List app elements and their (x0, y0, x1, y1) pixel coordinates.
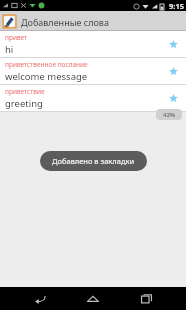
staticText: Добавлено в закладки (52, 156, 135, 166)
button[interactable]: Home (80, 287, 106, 310)
staticText: greeting (5, 97, 43, 110)
button[interactable]: Recent apps (133, 287, 159, 310)
button[interactable]: Добавлено в закладки (40, 151, 147, 171)
staticText: привет (5, 33, 28, 42)
staticText: Добавленные слова (21, 16, 109, 28)
button[interactable]: Bookmark (163, 34, 183, 54)
staticText: hi (5, 43, 14, 56)
button[interactable]: Battery (156, 109, 182, 120)
staticText: welcome message (5, 70, 88, 83)
button[interactable]: Back (27, 287, 53, 310)
staticText: 42% (163, 111, 176, 119)
button[interactable]: привет (0, 31, 186, 57)
staticText: приветственное послание (5, 60, 88, 69)
staticText: 9:15 (169, 1, 184, 11)
button[interactable]: Bookmark (163, 88, 183, 108)
button[interactable]: Добавленные слова (0, 11, 186, 31)
button[interactable]: приветствие (0, 85, 186, 111)
staticText: приветствие (5, 87, 45, 96)
button[interactable]: Bookmark (163, 61, 183, 81)
button[interactable]: приветственное послание (0, 58, 186, 84)
